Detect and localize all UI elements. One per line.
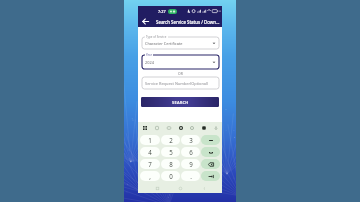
- staticText: 3: [189, 136, 193, 144]
- staticText: 7:27: [158, 9, 166, 14]
- staticText: Character Certificate: [145, 41, 183, 46]
- button[interactable]: Character Certificate: [142, 37, 219, 49]
- button[interactable]: Back: [199, 185, 209, 191]
- button[interactable]: Home: [175, 185, 185, 191]
- staticText: ,: [149, 172, 151, 180]
- staticText: 5: [169, 148, 173, 156]
- button[interactable]: 7: [140, 159, 160, 169]
- staticText: 7: [148, 160, 152, 168]
- button[interactable]: 1: [140, 135, 160, 145]
- staticText: 2: [169, 136, 173, 144]
- button[interactable]: Theme: [200, 124, 207, 131]
- staticText: 8: [169, 160, 173, 168]
- button[interactable]: Settings: [177, 124, 184, 131]
- button[interactable]: Minus: [201, 135, 220, 145]
- button[interactable]: Tilde: [201, 147, 220, 157]
- staticText: 6: [189, 148, 193, 156]
- button[interactable]: 2024: [142, 55, 219, 69]
- button[interactable]: Clipboard: [153, 124, 160, 131]
- button[interactable]: Sticker: [188, 124, 195, 131]
- staticText: .: [190, 172, 192, 180]
- button[interactable]: 2: [161, 135, 180, 145]
- button[interactable]: Translate: [165, 124, 172, 131]
- button[interactable]: Back: [138, 16, 153, 27]
- staticText: Type of Service: [146, 35, 167, 39]
- staticText: Service Request Number(Optional): [145, 81, 209, 86]
- button[interactable]: SEARCH: [141, 97, 219, 107]
- button[interactable]: 9: [181, 159, 200, 169]
- button[interactable]: .: [181, 171, 200, 181]
- staticText: Search Service Status / Down...: [156, 19, 220, 25]
- button[interactable]: Backspace: [201, 159, 220, 169]
- button[interactable]: Apps: [141, 124, 148, 131]
- button[interactable]: 5: [161, 147, 180, 157]
- staticText: 9: [189, 160, 193, 168]
- staticText: 2024: [145, 60, 154, 65]
- button[interactable]: 8: [161, 159, 180, 169]
- staticText: 0: [169, 172, 173, 180]
- staticText: OR: [178, 71, 183, 76]
- button[interactable]: ,: [140, 171, 160, 181]
- button[interactable]: 0: [161, 171, 180, 181]
- button[interactable]: Tab: [201, 171, 220, 181]
- staticText: 1: [148, 136, 152, 144]
- button[interactable]: 6: [181, 147, 200, 157]
- button[interactable]: Recents: [152, 185, 162, 191]
- button[interactable]: 4: [140, 147, 160, 157]
- button[interactable]: 3: [181, 135, 200, 145]
- staticText: SEARCH: [172, 100, 189, 105]
- button[interactable]: Service Request Number(Optional): [142, 77, 219, 89]
- staticText: 4: [148, 148, 152, 156]
- staticText: Year: [146, 53, 152, 57]
- button[interactable]: Voice input: [212, 124, 219, 131]
